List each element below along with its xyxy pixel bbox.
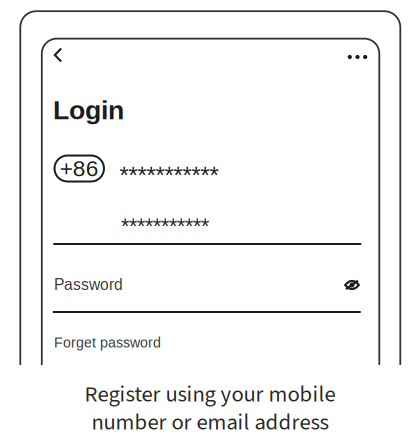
staticText: +86: [60, 156, 99, 181]
staticText: Login: [53, 95, 124, 125]
staticText: number or email address: [91, 406, 328, 439]
button[interactable]: Show password: [338, 273, 366, 297]
button[interactable]: Back: [43, 40, 73, 70]
staticText: Password: [54, 276, 123, 293]
button[interactable]: Forget password: [54, 331, 204, 353]
staticText: ***********: [119, 162, 218, 189]
staticText: Forget password: [54, 335, 161, 350]
staticText: Register using your mobile: [84, 378, 335, 411]
staticText: ***********: [121, 214, 209, 238]
button[interactable]: More options: [341, 43, 373, 71]
